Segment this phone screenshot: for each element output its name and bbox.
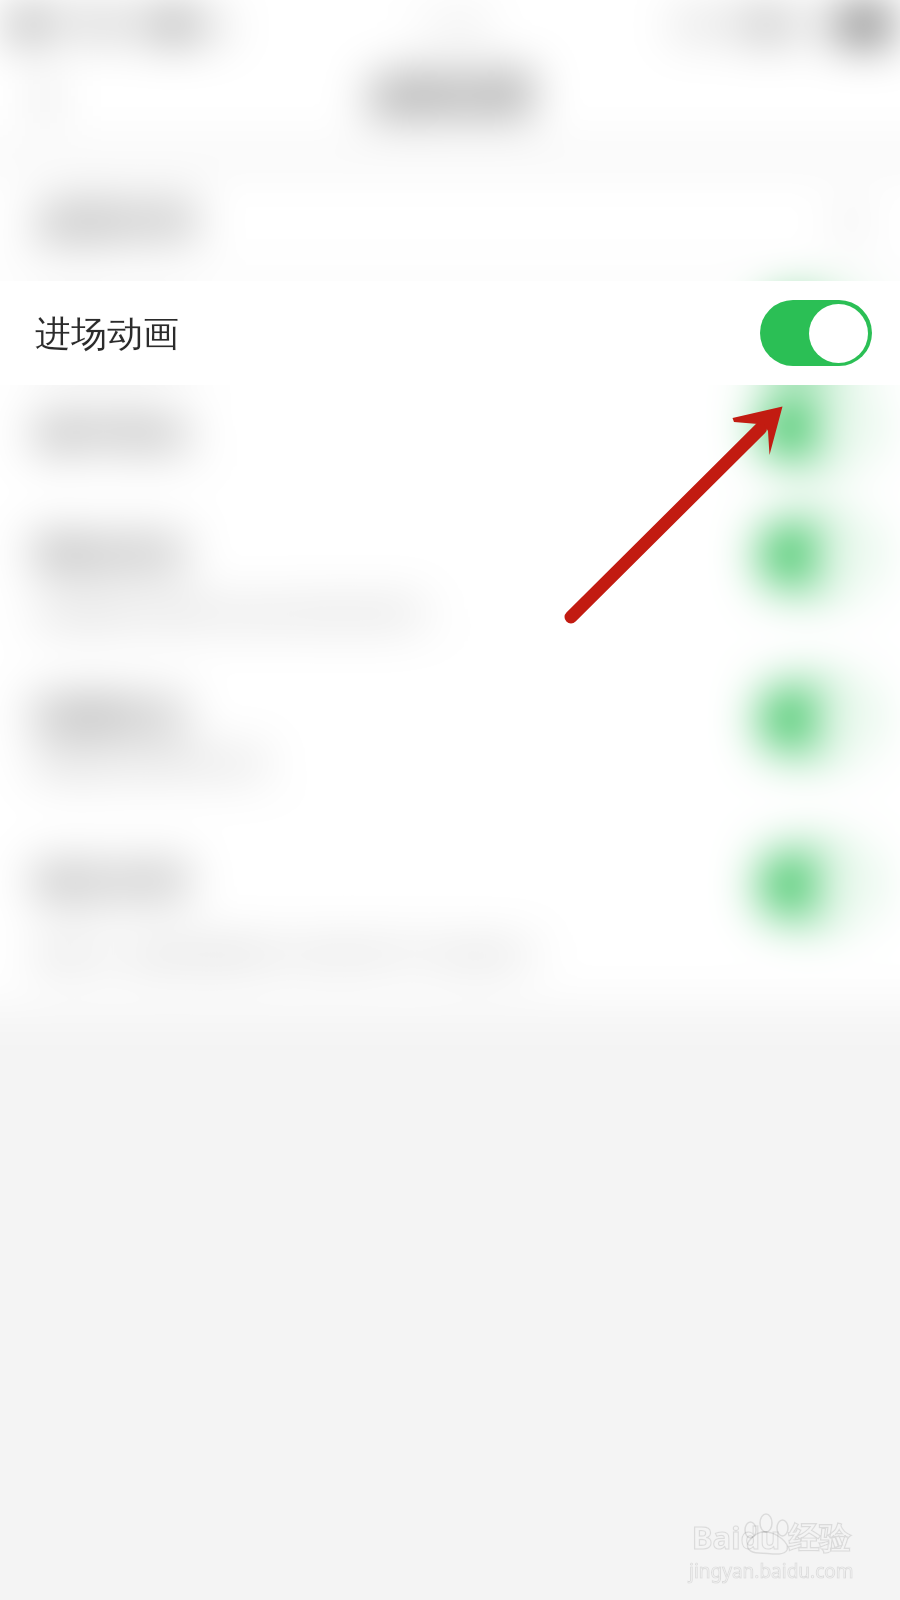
staticText: 桌面布局 [35,196,195,246]
staticText: 锁定布局 [35,858,187,906]
button[interactable]: 锁定布局 switch [760,852,872,918]
staticText: 隐藏状态 [35,691,187,739]
staticText: 隐藏桌面顶部状态栏 [35,747,269,780]
button[interactable]: 进场动画 switch [760,300,872,366]
staticText: 图标填充 [35,530,187,578]
button[interactable]: 进场动画 [0,281,900,385]
staticText: 循环滑动 [35,409,187,457]
staticText: 4G [194,7,228,42]
button[interactable]: 循环滑动 switch [760,394,872,460]
staticText: Baidu 经验 [692,1516,851,1558]
staticText: 进场动画 [35,311,179,356]
staticText: jingyan.baidu.com [689,1558,854,1584]
button[interactable]: 循环滑动 [0,385,900,475]
button[interactable]: 隐藏状态 [0,640,900,804]
button[interactable]: 图标填充 [0,475,900,640]
staticText: 桌面设置 [368,71,532,123]
button[interactable]: 图标填充 switch [760,522,872,588]
staticText: 进场动画 [35,311,187,359]
button[interactable]: 进场动画 [0,281,900,385]
button[interactable]: 隐藏状态 switch [760,686,872,752]
button[interactable]: 桌面布局 [0,169,900,272]
staticText: 82% [788,8,836,41]
button[interactable]: 锁定布局 [0,804,900,995]
button[interactable]: 进场动画 switch, on [760,300,872,366]
staticText: 免打扰 [674,10,746,40]
